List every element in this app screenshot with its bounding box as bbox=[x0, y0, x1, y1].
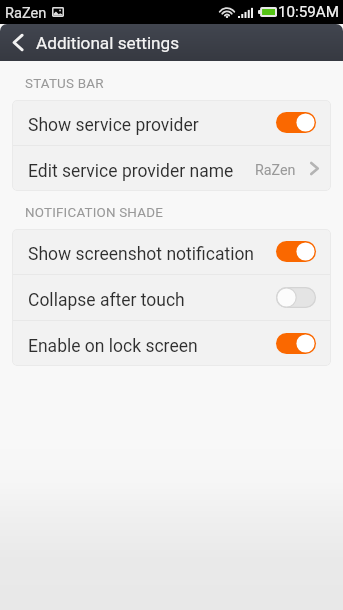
staticText: Collapse after touch bbox=[28, 290, 276, 311]
button[interactable]: Enable on lock screen bbox=[12, 321, 331, 366]
staticText: Additional settings bbox=[36, 33, 180, 53]
staticText: STATUS BAR bbox=[25, 76, 104, 92]
staticText: Show screenshot notification bbox=[28, 244, 276, 265]
staticText: Enable on lock screen bbox=[28, 336, 276, 357]
staticText: RaZen bbox=[255, 162, 296, 179]
staticText: Edit service provider name bbox=[28, 161, 255, 182]
button[interactable]: Show service provider bbox=[12, 100, 331, 145]
button[interactable]: Collapse after touch bbox=[12, 275, 331, 320]
button[interactable]: Edit service provider name bbox=[12, 146, 331, 191]
staticText: NOTIFICATION SHADE bbox=[25, 205, 163, 221]
button[interactable]: Show screenshot notification bbox=[12, 229, 331, 274]
button[interactable]: Back bbox=[0, 24, 36, 61]
staticText: RaZen bbox=[5, 4, 47, 21]
staticText: 10:59AM bbox=[278, 3, 339, 21]
staticText: Show service provider bbox=[28, 115, 276, 136]
